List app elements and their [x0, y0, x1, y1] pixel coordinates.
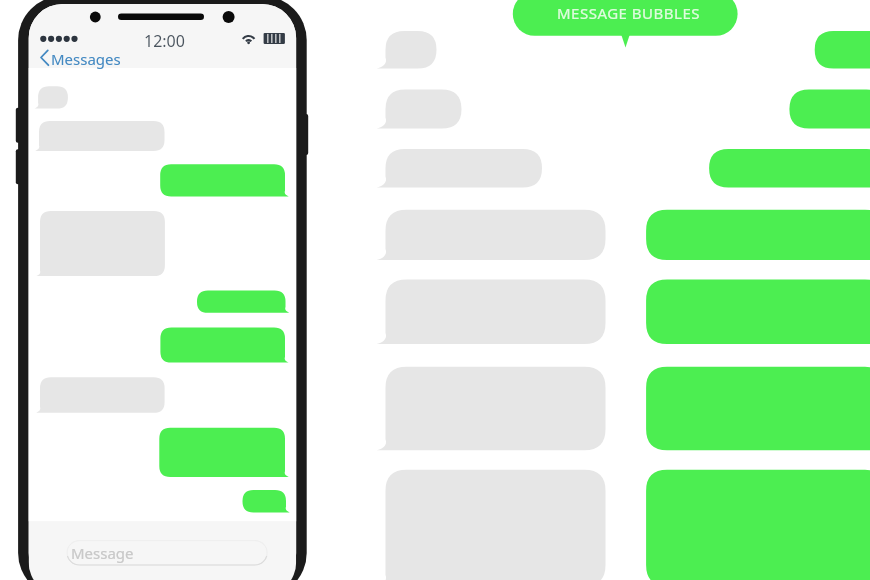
- button[interactable]: Wi-Fi: [240, 32, 258, 45]
- button[interactable]: Sent message 7: [159, 428, 285, 477]
- button[interactable]: Green bubble 0: [815, 31, 870, 69]
- button[interactable]: Received message 6: [40, 377, 165, 413]
- button[interactable]: Grey bubble 4: [386, 280, 606, 345]
- button[interactable]: Grey bubble 2: [386, 149, 543, 188]
- button[interactable]: Battery: [263, 32, 286, 45]
- button[interactable]: Sent message 2: [160, 164, 285, 196]
- button[interactable]: Grey bubble 3: [386, 210, 606, 260]
- button[interactable]: Grey bubble 0: [386, 31, 437, 69]
- staticText: 12:00: [144, 30, 185, 52]
- staticText: MESSAGE BUBBLES: [557, 3, 701, 23]
- button[interactable]: Message input field: [67, 540, 267, 565]
- staticText: Messages: [51, 49, 121, 69]
- button[interactable]: Green bubble 4: [646, 280, 870, 345]
- button[interactable]: Received message 1: [39, 121, 165, 151]
- button[interactable]: Received message 0: [38, 86, 68, 108]
- button[interactable]: Green bubble 1: [789, 90, 870, 129]
- button[interactable]: Green bubble 2: [709, 149, 870, 188]
- button[interactable]: Grey bubble 1: [386, 90, 462, 129]
- button[interactable]: Sent message 8: [243, 490, 287, 512]
- button[interactable]: Back to Messages: [38, 46, 122, 69]
- button[interactable]: Sent message 5: [160, 327, 285, 362]
- button[interactable]: Sent message 4: [197, 290, 286, 312]
- button[interactable]: Green bubble 5: [646, 367, 870, 451]
- staticText: Message: [71, 543, 134, 563]
- button[interactable]: Grey bubble 5: [386, 367, 606, 451]
- button[interactable]: Green bubble 6: [646, 470, 870, 580]
- button[interactable]: Green bubble 3: [646, 210, 870, 260]
